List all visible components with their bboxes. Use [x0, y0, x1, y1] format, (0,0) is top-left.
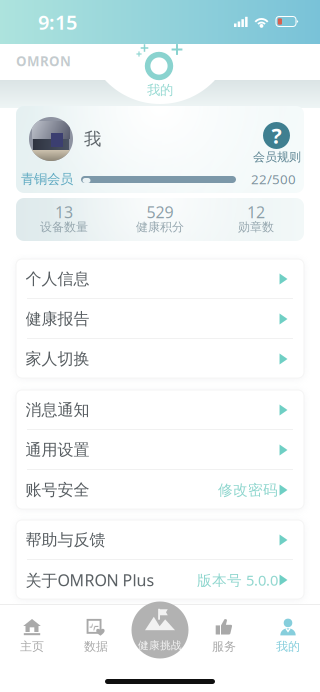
button[interactable]: 帮助与反馈: [16, 520, 304, 559]
button[interactable]: 通用设置: [16, 430, 304, 469]
staticText: 529: [146, 201, 173, 223]
staticText: 会员规则: [253, 150, 301, 164]
staticText: 勋章数: [238, 220, 274, 234]
staticText: 家人切换: [25, 349, 89, 369]
button[interactable]: 账号安全: [16, 470, 304, 509]
button[interactable]: 数据: [64, 609, 128, 657]
staticText: 主页: [20, 639, 44, 654]
staticText: 健康挑战: [138, 639, 182, 652]
staticText: 健康报告: [25, 309, 89, 329]
staticText: 通用设置: [25, 440, 89, 460]
staticText: 12: [247, 201, 265, 223]
staticText: 青铜会员: [21, 171, 73, 187]
staticText: 22/500: [251, 170, 296, 188]
button[interactable]: 消息通知: [16, 390, 304, 429]
staticText: 9:15: [38, 9, 77, 35]
button[interactable]: 健康挑战: [131, 601, 188, 658]
staticText: 版本号 5.0.0: [197, 570, 278, 590]
staticText: OMRON: [16, 52, 71, 70]
button[interactable]: 服务: [192, 609, 256, 657]
staticText: 13: [55, 201, 73, 223]
button[interactable]: 主页: [0, 609, 64, 657]
staticText: 健康积分: [136, 220, 184, 234]
staticText: 关于OMRON Plus: [25, 569, 154, 591]
staticText: 帮助与反馈: [25, 530, 105, 550]
staticText: 我: [84, 128, 101, 150]
staticText: 消息通知: [25, 400, 89, 420]
button[interactable]: 个人信息: [16, 259, 304, 298]
staticText: 服务: [212, 639, 236, 654]
staticText: ?: [271, 121, 281, 150]
staticText: 修改密码: [218, 481, 278, 499]
button[interactable]: ?: [250, 118, 304, 166]
button[interactable]: 关于OMRON Plus: [16, 560, 304, 599]
staticText: 个人信息: [25, 269, 89, 289]
staticText: 设备数量: [40, 220, 88, 234]
staticText: 我的: [147, 82, 173, 98]
button[interactable]: 家人切换: [16, 339, 304, 378]
staticText: 账号安全: [25, 480, 89, 500]
button[interactable]: 我的: [256, 609, 320, 657]
staticText: 我的: [276, 639, 300, 654]
staticText: 数据: [84, 639, 108, 654]
button[interactable]: 健康报告: [16, 299, 304, 338]
